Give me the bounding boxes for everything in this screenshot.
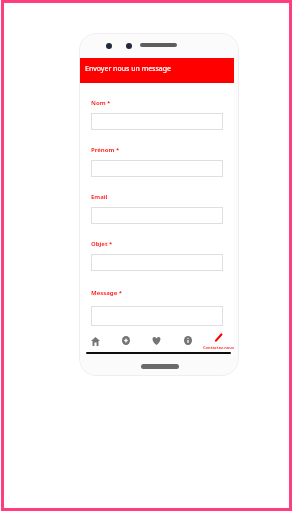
button[interactable]	[91, 306, 223, 326]
staticText: Objet *	[91, 240, 113, 248]
button[interactable]: Info	[172, 329, 203, 338]
button[interactable]: Add	[110, 329, 141, 338]
button[interactable]: Envoyer nous un message	[80, 58, 234, 83]
staticText: Contactez-nous	[203, 345, 234, 350]
button[interactable]: Favorites	[141, 329, 172, 338]
button[interactable]: Home	[80, 329, 110, 338]
button[interactable]	[91, 113, 223, 130]
button[interactable]	[91, 207, 223, 224]
button[interactable]: Contactez-nous	[203, 329, 234, 350]
staticText: Nom *	[91, 99, 111, 107]
button[interactable]	[91, 160, 223, 177]
staticText: Message *	[91, 289, 123, 297]
staticText: Envoyer nous un message	[85, 64, 172, 74]
staticText: Email	[91, 193, 108, 201]
button[interactable]	[91, 254, 223, 271]
staticText: Prénom *	[91, 146, 120, 154]
